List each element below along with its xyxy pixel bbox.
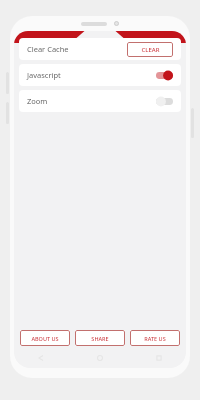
staticText: Javascript <box>27 70 156 80</box>
staticText: CLEAR <box>141 46 160 54</box>
staticText: SHARE <box>91 335 109 342</box>
button[interactable]: Home <box>95 353 105 363</box>
button[interactable]: CLEAR <box>127 42 173 57</box>
button[interactable]: Javascript <box>19 64 181 86</box>
staticText: Clear Cache <box>27 44 127 54</box>
button[interactable]: Clear Cache <box>19 38 181 60</box>
button[interactable]: RATE US <box>130 330 180 346</box>
button[interactable]: ABOUT US <box>20 330 70 346</box>
button[interactable]: Back <box>36 353 46 363</box>
staticText: Zoom <box>27 96 156 106</box>
button[interactable]: Recents <box>154 353 164 363</box>
staticText: RATE US <box>144 335 166 342</box>
button[interactable]: Zoom <box>19 90 181 112</box>
staticText: ABOUT US <box>31 335 59 342</box>
button[interactable]: SHARE <box>75 330 125 346</box>
button[interactable]: Toggle off <box>156 96 173 107</box>
button[interactable]: Toggle on <box>156 70 173 81</box>
